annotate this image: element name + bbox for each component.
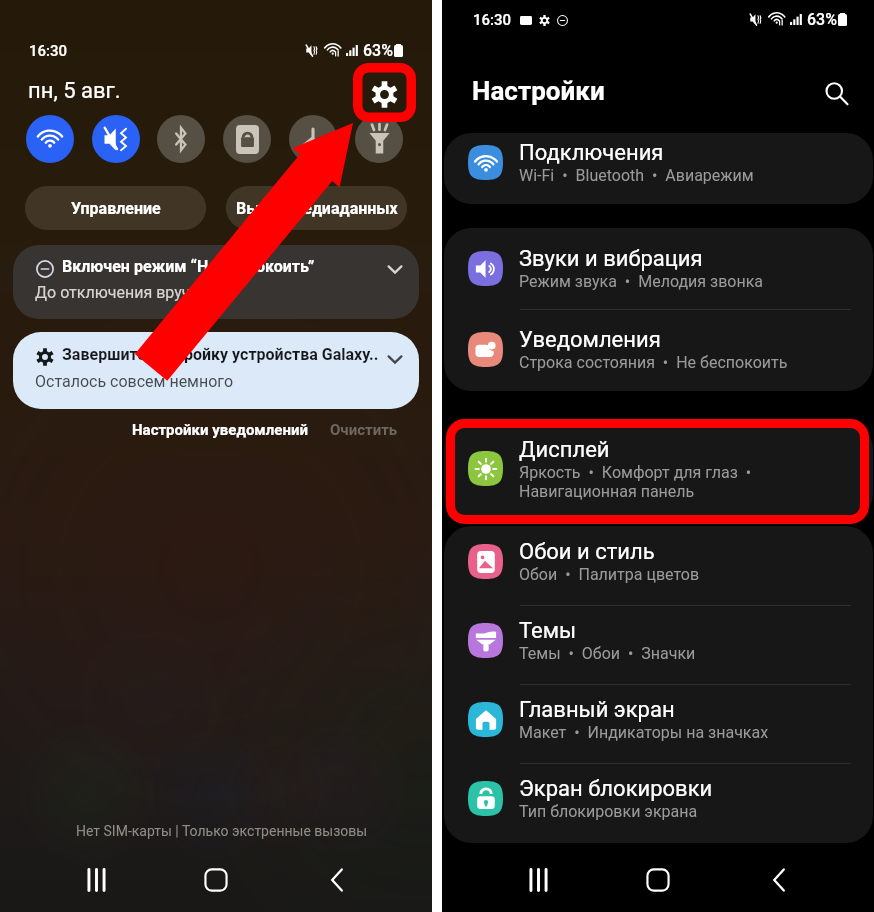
- staticText: Темы: [519, 618, 577, 644]
- button[interactable]: Recents: [510, 862, 566, 898]
- button[interactable]: Вывод медиаданных: [226, 186, 407, 230]
- button[interactable]: Back: [309, 862, 365, 898]
- button[interactable]: Toggle: [289, 115, 337, 163]
- staticText: Уведомления: [519, 327, 661, 353]
- staticText: Темы • Обои • Значки: [519, 644, 696, 663]
- staticText: 63%: [807, 10, 837, 29]
- button[interactable]: Очистить: [330, 421, 398, 439]
- staticText: Звуки и вибрация: [519, 246, 703, 272]
- staticText: Строка состояния • Не беспокоить: [519, 353, 788, 372]
- staticText: пн, 5 авг.: [28, 78, 121, 104]
- staticText: Навигационная панель: [519, 482, 695, 501]
- button[interactable]: Завершите настройку устройства Galaxy..: [13, 332, 419, 409]
- staticText: Подключения: [519, 140, 664, 166]
- staticText: Тип блокировки экрана: [519, 802, 698, 821]
- staticText: 63%: [363, 41, 393, 60]
- button[interactable]: Управление: [25, 186, 206, 230]
- button[interactable]: Toggle: [223, 115, 271, 163]
- staticText: До отключения вручную: [35, 283, 221, 302]
- staticText: 16:30: [473, 11, 512, 29]
- button[interactable]: Экран блокировки: [444, 763, 873, 842]
- button[interactable]: Главный экран: [444, 684, 873, 763]
- button[interactable]: Back: [751, 862, 807, 898]
- staticText: Макет • Индикаторы на значках: [519, 723, 769, 742]
- staticText: Wi-Fi • Bluetooth • Авиарежим: [519, 166, 754, 185]
- button[interactable]: Настройки уведомлений: [132, 421, 308, 439]
- staticText: Осталось совсем немного: [35, 372, 234, 391]
- button[interactable]: Подключения: [444, 133, 873, 204]
- staticText: Главный экран: [519, 697, 675, 723]
- staticText: Управление: [71, 199, 161, 218]
- staticText: Настройки: [472, 76, 605, 106]
- button[interactable]: Home: [630, 862, 686, 898]
- staticText: Экран блокировки: [519, 776, 713, 802]
- button[interactable]: Toggle: [157, 115, 205, 163]
- staticText: 16:30: [29, 42, 68, 60]
- staticText: Вывод медиаданных: [236, 199, 398, 218]
- staticText: Обои • Палитра цветов: [519, 565, 700, 584]
- staticText: Включен режим “Не беспокоить”: [62, 257, 315, 276]
- button[interactable]: Recents: [68, 862, 124, 898]
- staticText: Нет SIM-карты | Только экстренные вызовы: [76, 823, 368, 839]
- button[interactable]: Settings: [362, 72, 406, 116]
- button[interactable]: Включен режим “Не беспокоить”: [13, 245, 419, 319]
- button[interactable]: Home: [188, 862, 244, 898]
- button[interactable]: Toggle: [355, 115, 403, 163]
- button[interactable]: Обои и стиль: [444, 526, 873, 605]
- staticText: Обои и стиль: [519, 539, 655, 565]
- staticText: Дисплей: [519, 437, 610, 463]
- staticText: Завершите настройку устройства Galaxy..: [62, 345, 379, 364]
- button[interactable]: Search: [814, 71, 858, 115]
- staticText: Яркость • Комфорт для глаз •: [519, 463, 752, 482]
- button[interactable]: Toggle: [92, 115, 140, 163]
- button[interactable]: Звуки и вибрация: [444, 228, 873, 309]
- staticText: Режим звука • Мелодия звонка: [519, 272, 764, 291]
- button[interactable]: Темы: [444, 605, 873, 684]
- button[interactable]: Уведомления: [444, 309, 873, 390]
- button[interactable]: Дисплей: [444, 422, 873, 521]
- button[interactable]: Toggle: [26, 115, 74, 163]
